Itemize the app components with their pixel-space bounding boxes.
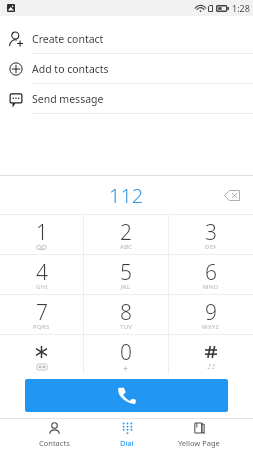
staticText: Yellow Page xyxy=(178,438,220,448)
staticText: 112 xyxy=(109,182,144,209)
button[interactable]: Send message xyxy=(0,84,253,114)
staticText: 9 xyxy=(205,298,217,325)
staticText: DEF xyxy=(205,243,217,251)
button[interactable]: 3 xyxy=(169,215,253,254)
staticText: 1 xyxy=(36,218,48,245)
button[interactable]: ♪♪ xyxy=(169,335,253,374)
button[interactable]: Contacts xyxy=(18,419,91,450)
button[interactable]: 0 xyxy=(84,335,168,374)
staticText: ♪♪ xyxy=(207,363,216,371)
staticText: 7 xyxy=(36,298,48,325)
staticText: WXYZ xyxy=(202,323,220,331)
staticText: PQRS xyxy=(33,323,50,331)
button[interactable]: 2 xyxy=(84,215,168,254)
staticText: 2 xyxy=(120,218,132,245)
staticText: 4 xyxy=(36,258,48,285)
staticText: JKL xyxy=(121,283,131,291)
staticText: Dial xyxy=(120,438,134,448)
button[interactable]: Call xyxy=(25,379,228,412)
staticText: MNO xyxy=(203,283,219,291)
button[interactable]: Add to contacts xyxy=(0,54,253,84)
button[interactable]: Create contact xyxy=(0,24,253,54)
staticText: GHI xyxy=(36,283,48,291)
button[interactable]: 6 xyxy=(169,255,253,294)
staticText: + xyxy=(123,362,129,372)
staticText: Create contact xyxy=(32,32,104,46)
staticText: 0 xyxy=(120,338,132,365)
button[interactable]: 9 xyxy=(169,295,253,334)
staticText: 1:28 xyxy=(232,2,250,14)
button[interactable]: 5 xyxy=(84,255,168,294)
button[interactable]: 1 xyxy=(0,215,83,254)
staticText: Send message xyxy=(32,92,104,106)
button[interactable]: 8 xyxy=(84,295,168,334)
staticText: Add to contacts xyxy=(32,62,109,76)
staticText: Contacts xyxy=(39,438,70,448)
staticText: 3 xyxy=(205,218,217,245)
button[interactable]: Dial xyxy=(91,419,163,450)
staticText: TUV xyxy=(120,323,133,331)
button[interactable]: Yellow Page xyxy=(163,419,235,450)
staticText: 6 xyxy=(205,258,217,285)
button[interactable]: Backspace xyxy=(211,176,253,214)
staticText: 5 xyxy=(120,258,132,285)
staticText: ABC xyxy=(120,243,133,251)
staticText: 8 xyxy=(120,298,132,325)
button[interactable]: 7 xyxy=(0,295,83,334)
button[interactable]: 4 xyxy=(0,255,83,294)
button[interactable] xyxy=(0,335,83,374)
